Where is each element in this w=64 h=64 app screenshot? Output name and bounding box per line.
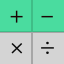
button[interactable]: Divide: [33, 32, 64, 64]
button[interactable]: Multiply: [0, 32, 31, 64]
button[interactable]: Plus: [0, 0, 31, 32]
button[interactable]: Minus: [33, 0, 64, 32]
